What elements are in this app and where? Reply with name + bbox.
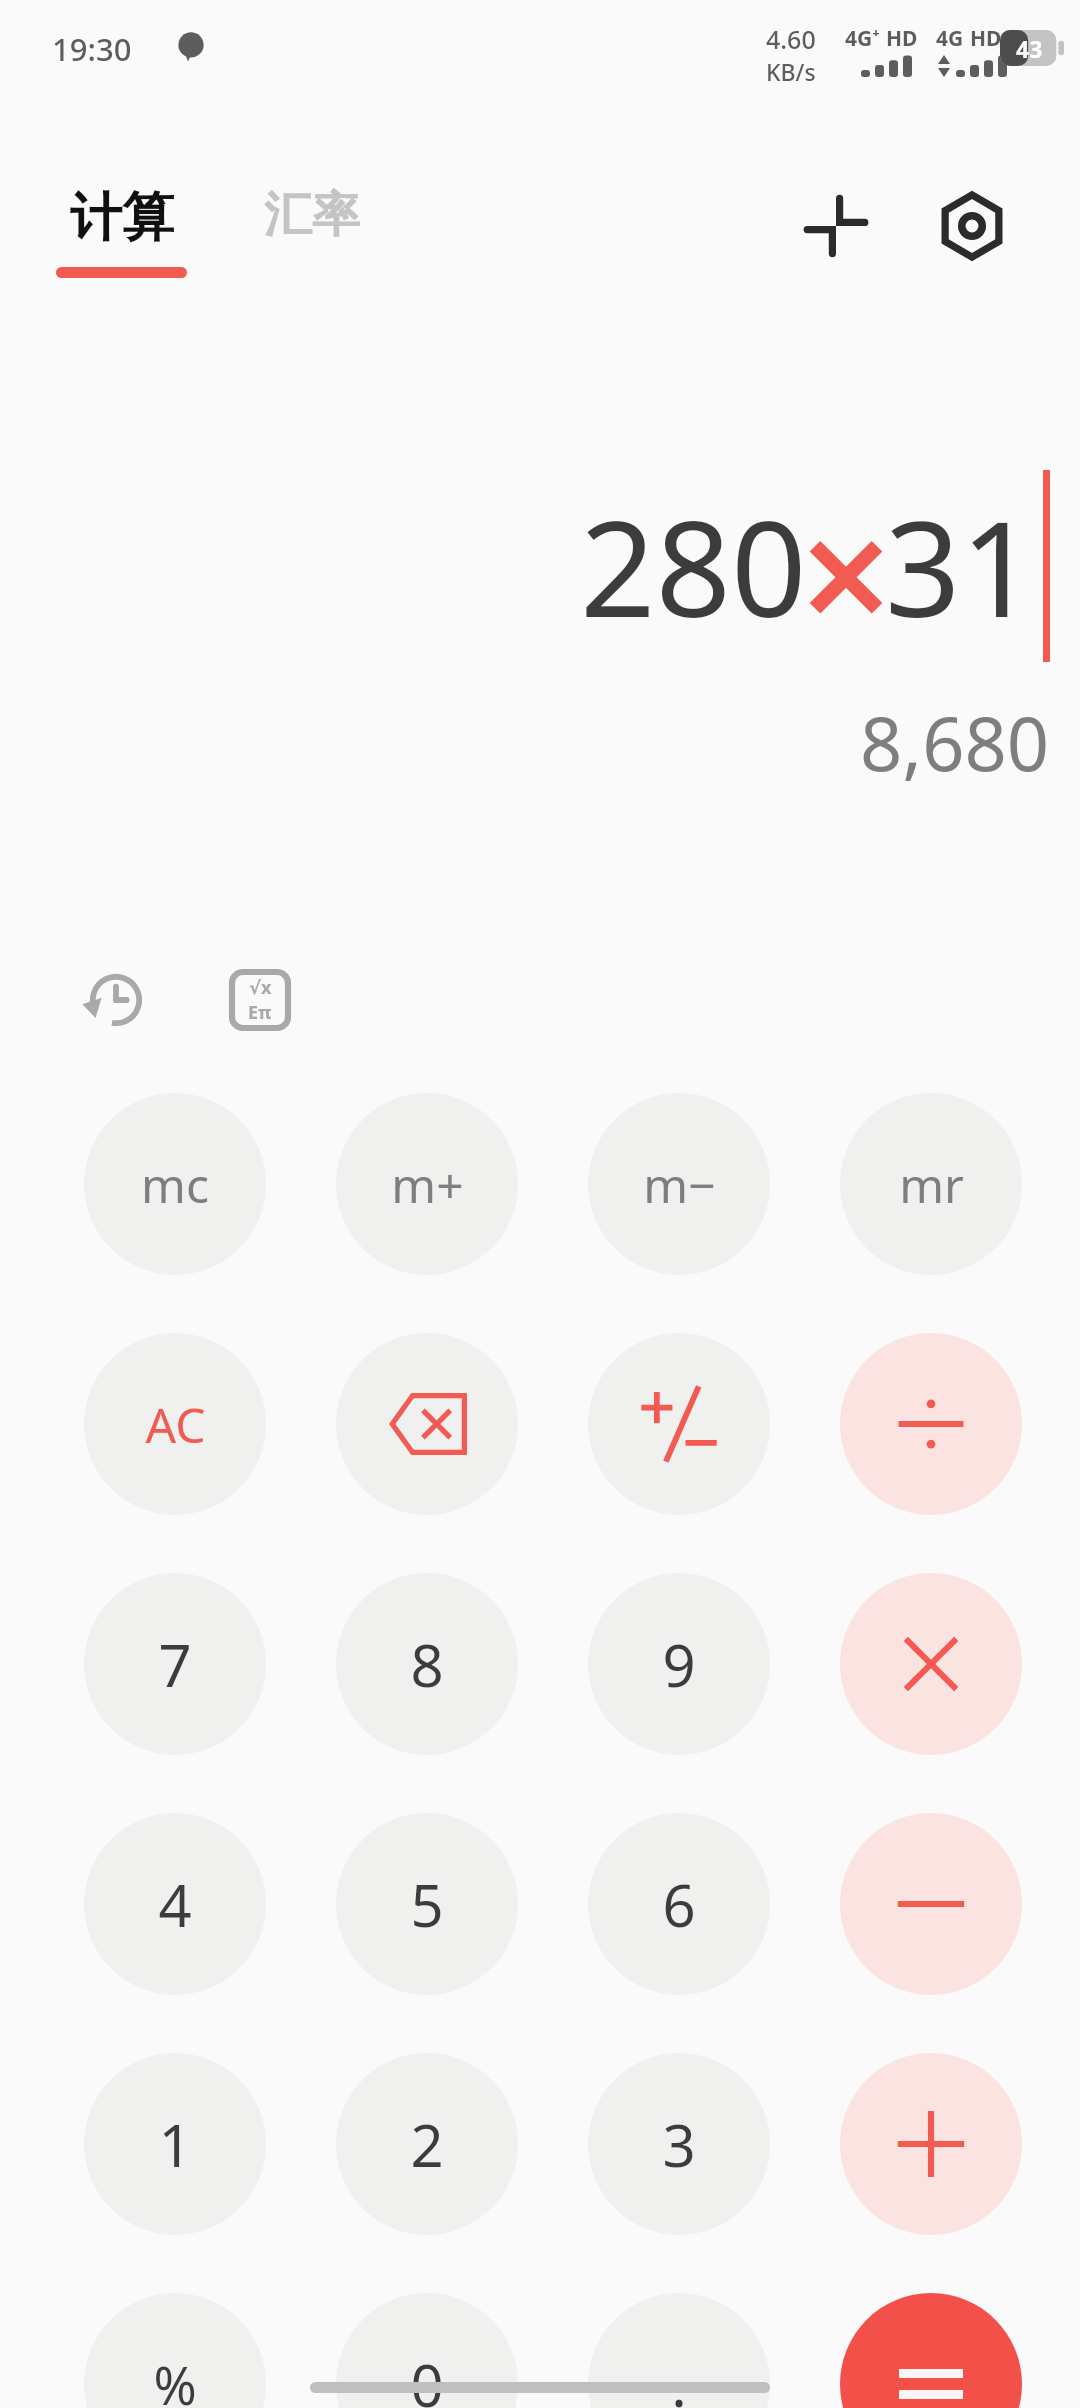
staticText: 9 <box>662 1625 696 1704</box>
staticText: 8 <box>410 1625 444 1704</box>
staticText: 6 <box>662 1865 696 1944</box>
button[interactable]: Equals <box>840 2293 1022 2408</box>
staticText: 0 <box>410 2345 444 2408</box>
staticText: 31 <box>885 476 1037 656</box>
staticText: 4 <box>158 1865 192 1944</box>
button[interactable]: History <box>78 962 154 1038</box>
staticText: HD <box>970 24 1002 53</box>
staticText: 4.60 <box>766 22 816 56</box>
button[interactable]: mr <box>840 1093 1022 1275</box>
button[interactable]: Settings <box>922 176 1022 276</box>
button[interactable]: mc <box>84 1093 266 1275</box>
staticText: m− <box>643 1152 716 1217</box>
button[interactable]: 计算 <box>56 185 187 278</box>
button[interactable]: 8 <box>336 1573 518 1755</box>
staticText: 计算 <box>70 185 174 251</box>
staticText: m+ <box>391 1152 464 1217</box>
button[interactable]: 2 <box>336 2053 518 2235</box>
button[interactable]: Backspace <box>336 1333 518 1515</box>
staticText: 3 <box>662 2105 696 2184</box>
staticText: AC <box>145 1392 206 1457</box>
staticText: 汇率 <box>264 185 360 245</box>
staticText: KB/s <box>766 56 816 87</box>
button[interactable]: 5 <box>336 1813 518 1995</box>
button[interactable]: 7 <box>84 1573 266 1755</box>
staticText: mr <box>899 1152 964 1217</box>
button[interactable]: 9 <box>588 1573 770 1755</box>
button[interactable]: 4 <box>84 1813 266 1995</box>
button[interactable]: Minus <box>840 1813 1022 1995</box>
staticText: Eπ <box>248 1000 272 1025</box>
button[interactable]: Divide <box>840 1333 1022 1515</box>
staticText: √x <box>249 975 272 1000</box>
staticText: 8,680 <box>860 692 1050 793</box>
button[interactable]: 1 <box>84 2053 266 2235</box>
staticText: 19:30 <box>52 28 132 70</box>
button[interactable]: m− <box>588 1093 770 1275</box>
button[interactable]: AC <box>84 1333 266 1515</box>
button[interactable]: . <box>588 2293 770 2408</box>
button[interactable]: Toggle sign <box>588 1333 770 1515</box>
staticText: % <box>153 2349 197 2408</box>
staticText: 5 <box>410 1865 444 1944</box>
staticText: 280 <box>580 476 807 656</box>
button[interactable]: Unit converter <box>786 176 886 276</box>
button[interactable]: Multiply <box>840 1573 1022 1755</box>
button[interactable]: 3 <box>588 2053 770 2235</box>
staticText: 7 <box>158 1625 192 1704</box>
staticText: mc <box>141 1152 209 1217</box>
staticText: 4G <box>936 24 964 53</box>
staticText: 1 <box>158 2105 192 2184</box>
staticText: 2 <box>410 2105 444 2184</box>
button[interactable]: 6 <box>588 1813 770 1995</box>
staticText: . <box>671 2345 687 2408</box>
button[interactable]: 汇率 <box>264 185 360 245</box>
staticText: HD <box>886 24 918 53</box>
button[interactable]: Scientific mode <box>222 962 298 1038</box>
button[interactable]: Plus <box>840 2053 1022 2235</box>
button[interactable]: m+ <box>336 1093 518 1275</box>
staticText: 4G⁺ <box>845 24 880 53</box>
button[interactable]: % <box>84 2293 266 2408</box>
staticText: 43 <box>1016 33 1043 64</box>
button[interactable]: 0 <box>336 2293 518 2408</box>
